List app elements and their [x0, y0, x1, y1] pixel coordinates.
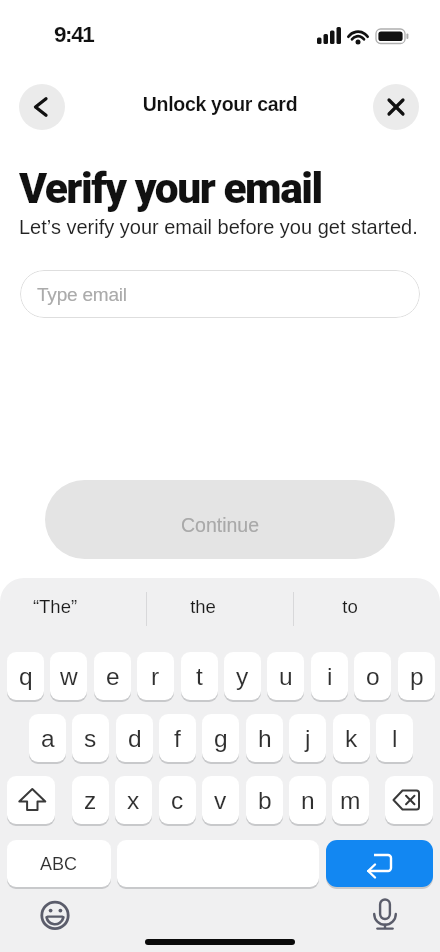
button[interactable]: p	[398, 652, 435, 700]
button[interactable]: i	[311, 652, 348, 700]
button[interactable]: t	[181, 652, 218, 700]
button[interactable]: n	[289, 776, 326, 824]
button[interactable]: l	[376, 714, 413, 762]
button[interactable]: s	[72, 714, 109, 762]
staticText: b	[258, 787, 272, 814]
staticText: e	[106, 663, 120, 690]
staticText: l	[392, 725, 398, 752]
button[interactable]: w	[50, 652, 87, 700]
button[interactable]: q	[7, 652, 44, 700]
staticText: m	[340, 787, 361, 814]
button[interactable]: a	[29, 714, 66, 762]
button[interactable]: h	[246, 714, 283, 762]
button[interactable]: j	[289, 714, 326, 762]
staticText: p	[410, 663, 424, 690]
staticText: j	[305, 725, 311, 752]
button[interactable]	[38, 898, 72, 932]
staticText: v	[214, 787, 227, 814]
button[interactable]	[19, 84, 65, 130]
staticText: ABC	[40, 854, 78, 874]
button[interactable]: Continue	[45, 480, 395, 559]
button[interactable]: x	[115, 776, 152, 824]
button[interactable]: ABC	[7, 840, 111, 887]
button[interactable]: v	[202, 776, 239, 824]
staticText: n	[301, 787, 315, 814]
button[interactable]: g	[202, 714, 239, 762]
staticText: k	[345, 725, 358, 752]
staticText: t	[196, 663, 203, 690]
button[interactable]: Type email	[20, 270, 420, 318]
button[interactable]	[368, 896, 402, 930]
staticText: the	[0, 596, 423, 617]
button[interactable]: u	[267, 652, 304, 700]
staticText: g	[214, 725, 228, 752]
staticText: a	[41, 725, 55, 752]
staticText: “The”	[0, 596, 275, 617]
button[interactable]	[385, 776, 433, 824]
staticText: Verify your email	[19, 164, 322, 214]
staticText: to	[130, 596, 440, 617]
button[interactable]: z	[72, 776, 109, 824]
staticText: q	[19, 663, 33, 690]
staticText: 9:41	[54, 22, 94, 47]
staticText: Continue	[181, 514, 260, 536]
staticText: o	[366, 663, 380, 690]
button[interactable]	[373, 84, 419, 130]
staticText: h	[258, 725, 272, 752]
button[interactable]	[326, 840, 433, 887]
button[interactable]: b	[246, 776, 283, 824]
staticText: s	[84, 725, 97, 752]
button[interactable]: o	[354, 652, 391, 700]
button[interactable]: d	[116, 714, 153, 762]
staticText: Unlock your card	[0, 93, 440, 115]
staticText: z	[84, 787, 97, 814]
staticText: r	[151, 663, 160, 690]
staticText: c	[171, 787, 184, 814]
button[interactable]: f	[159, 714, 196, 762]
button[interactable]: y	[224, 652, 261, 700]
button[interactable]: e	[94, 652, 131, 700]
staticText: i	[327, 663, 333, 690]
button[interactable]: m	[332, 776, 369, 824]
button[interactable]	[7, 776, 55, 824]
staticText: f	[174, 725, 181, 752]
staticText: w	[60, 663, 78, 690]
staticText: y	[236, 663, 249, 690]
button[interactable]: c	[159, 776, 196, 824]
staticText: Let’s verify your email before you get s…	[19, 216, 418, 238]
staticText: x	[127, 787, 140, 814]
button[interactable]: k	[333, 714, 370, 762]
staticText: Type email	[37, 284, 127, 305]
staticText: u	[279, 663, 293, 690]
staticText: d	[128, 725, 142, 752]
button[interactable]: r	[137, 652, 174, 700]
